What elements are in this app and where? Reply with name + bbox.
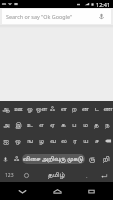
staticText: த xyxy=(94,122,99,129)
button[interactable]: ல xyxy=(58,133,69,149)
staticText: ஆ xyxy=(2,106,10,113)
staticText: இ xyxy=(15,122,22,129)
staticText: ர xyxy=(73,138,77,145)
staticText: றி xyxy=(103,156,110,163)
button[interactable]: ங xyxy=(24,133,36,149)
button[interactable]: ஔ xyxy=(36,101,47,117)
button[interactable]: ர xyxy=(69,133,80,149)
button[interactable]: ஃ xyxy=(47,101,58,117)
staticText: ஊ xyxy=(14,106,23,113)
button[interactable]: Recent apps xyxy=(79,182,103,200)
button[interactable]: ஒ xyxy=(12,133,24,149)
staticText: ண xyxy=(103,106,113,113)
button[interactable]: வ xyxy=(47,133,58,149)
button[interactable]: க xyxy=(58,117,69,133)
staticText: உ xyxy=(27,122,33,129)
button[interactable]: ஐ xyxy=(0,133,12,149)
button[interactable]: ஓ xyxy=(24,101,36,117)
staticText: ள xyxy=(61,106,67,113)
staticText: 123 xyxy=(5,172,14,179)
button[interactable]: ள xyxy=(58,101,69,117)
button[interactable]: ண xyxy=(102,101,113,117)
staticText: ஔ xyxy=(36,106,47,113)
button[interactable]: Home xyxy=(45,182,69,200)
staticText: ழ xyxy=(39,138,44,145)
button[interactable]: ப xyxy=(69,117,80,133)
staticText: ன xyxy=(82,106,89,113)
staticText: க xyxy=(61,122,66,129)
button[interactable]: ற xyxy=(69,101,80,117)
staticText: எ xyxy=(39,122,44,129)
button[interactable]: உ xyxy=(24,117,36,133)
button[interactable]: Back xyxy=(10,182,34,200)
button[interactable]: Search or say "Ok Google" xyxy=(2,9,111,24)
button[interactable]: ரு xyxy=(85,149,99,169)
staticText: ங xyxy=(27,138,33,145)
button[interactable]: ச xyxy=(91,133,102,149)
staticText: . xyxy=(86,172,88,180)
staticText: 12:41 xyxy=(96,1,111,8)
button[interactable]: ட xyxy=(91,101,102,117)
button[interactable]: 123 xyxy=(0,169,19,182)
staticText: ஐ xyxy=(3,138,9,145)
staticText: ஏ xyxy=(50,122,55,129)
staticText: ஃ xyxy=(14,156,20,163)
staticText: ட xyxy=(95,106,99,113)
button[interactable]: ஃ xyxy=(11,149,22,169)
button[interactable]: ம xyxy=(80,117,91,133)
button[interactable]: ந xyxy=(102,117,113,133)
button[interactable]: Voice search xyxy=(96,11,107,22)
button[interactable]: . xyxy=(79,169,94,182)
staticText: ஓ xyxy=(27,106,33,113)
button[interactable]: த xyxy=(91,117,102,133)
button[interactable]: ய xyxy=(80,133,91,149)
staticText: ரு xyxy=(89,156,96,163)
button[interactable]: இ xyxy=(12,117,24,133)
staticText: வ xyxy=(50,138,56,145)
button[interactable]: ஏ xyxy=(47,117,58,133)
button[interactable]: றி xyxy=(99,149,113,169)
staticText: ந xyxy=(105,122,110,129)
staticText: ச xyxy=(95,138,99,145)
staticText: ய xyxy=(83,138,89,145)
staticText: ற xyxy=(72,106,77,113)
staticText: ஒ xyxy=(15,138,21,145)
other: Backspace xyxy=(102,133,113,149)
staticText: தமிழ் xyxy=(48,172,65,179)
button[interactable]: அ xyxy=(0,117,12,133)
button[interactable]: Enter xyxy=(94,169,113,182)
staticText: அ xyxy=(3,122,10,129)
button[interactable]: ழ xyxy=(36,133,47,149)
staticText: ல xyxy=(61,138,67,145)
staticText: ம xyxy=(83,122,88,129)
button[interactable]: எ xyxy=(36,117,47,133)
button[interactable]: விசை அறிவுரு முகடு xyxy=(22,154,85,164)
button[interactable]: Backspace xyxy=(102,133,113,149)
button[interactable]: தமிழ் xyxy=(34,169,79,182)
staticText: விசை அறிவுரு முகடு xyxy=(23,156,84,163)
button[interactable]: Voice input xyxy=(0,149,11,169)
staticText: ப xyxy=(72,122,77,129)
button[interactable]: ஆ xyxy=(0,101,12,117)
button[interactable]: ன xyxy=(80,101,91,117)
staticText: ஃ xyxy=(50,106,55,113)
button[interactable]: Emoji xyxy=(19,169,34,182)
staticText: Search or say "Ok Google" xyxy=(6,13,73,20)
button[interactable]: ஊ xyxy=(12,101,24,117)
